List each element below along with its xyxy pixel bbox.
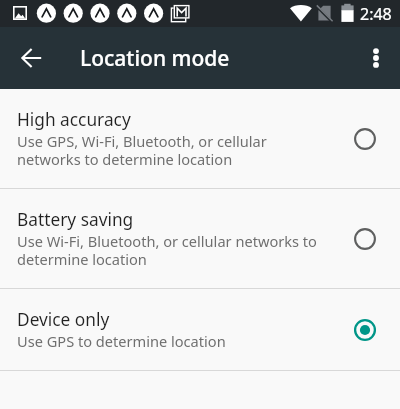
staticText: High accuracy [17,108,131,132]
staticText: Use GPS, Wi-Fi, Bluetooth, or cellular [17,131,267,151]
button[interactable]: Device only, selected [341,306,389,354]
button[interactable]: Device only [0,289,400,370]
staticText: 2:48 [360,3,392,25]
button[interactable]: Navigate up [10,36,54,80]
staticText: Device only [17,308,110,332]
staticText: Location mode [80,44,230,73]
button[interactable]: Battery saving [0,189,400,288]
button[interactable]: High accuracy [0,89,400,188]
staticText: Use Wi-Fi, Bluetooth, or cellular networ… [17,231,317,251]
button[interactable]: High accuracy [341,115,389,163]
staticText: determine location [17,249,147,269]
staticText: Use GPS to determine location [17,331,226,351]
staticText: Battery saving [17,208,134,232]
button[interactable]: Battery saving [341,215,389,263]
staticText: networks to determine location [17,149,233,169]
button[interactable]: More options [354,36,398,80]
